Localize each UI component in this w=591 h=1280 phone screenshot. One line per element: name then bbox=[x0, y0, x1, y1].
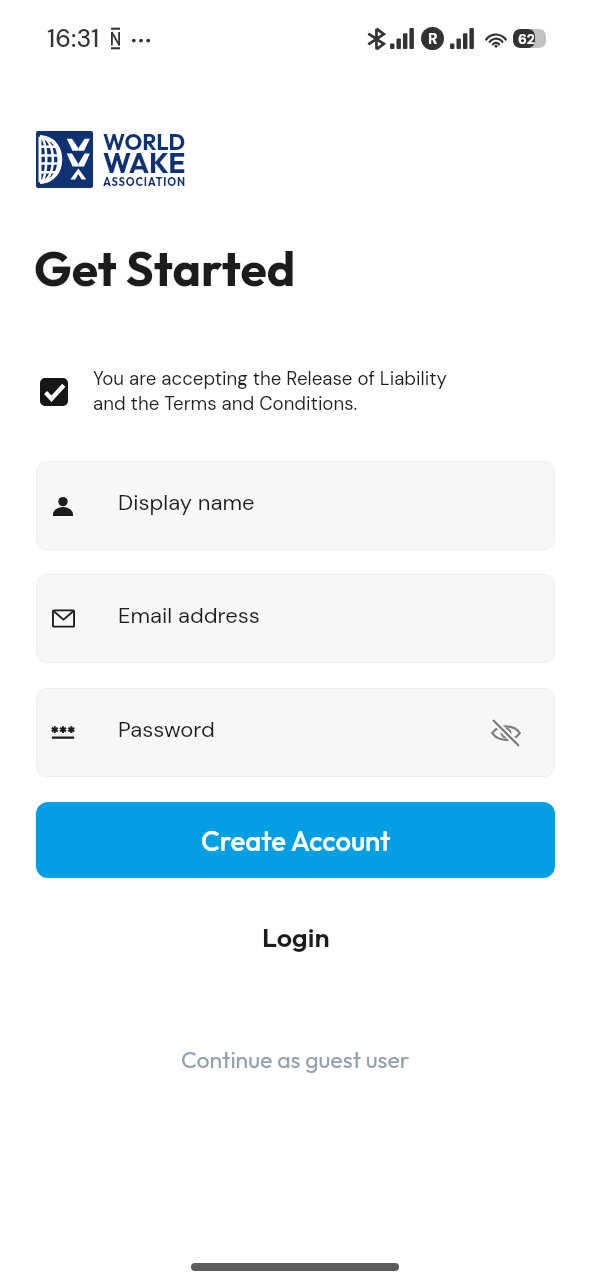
button[interactable]: Password bbox=[36, 688, 555, 777]
staticText: 16:31 bbox=[47, 22, 100, 55]
staticText: You are accepting the Release of Liabili… bbox=[93, 366, 447, 416]
staticText: R bbox=[428, 29, 438, 49]
staticText: Continue as guest user bbox=[181, 1045, 410, 1074]
button[interactable]: Email address bbox=[36, 574, 555, 663]
button[interactable]: You are accepting the Release of Liabili… bbox=[40, 366, 456, 416]
staticText: ASSOCIATION bbox=[103, 175, 186, 189]
staticText: Get Started bbox=[34, 238, 296, 298]
button[interactable]: Continue as guest user bbox=[163, 1037, 428, 1082]
staticText: Display name bbox=[118, 488, 255, 517]
button[interactable]: Show password bbox=[484, 711, 528, 755]
staticText: Login bbox=[262, 920, 330, 954]
button[interactable]: Create Account bbox=[36, 802, 555, 878]
staticText: WORLD bbox=[103, 128, 186, 156]
staticText: Create Account bbox=[201, 823, 391, 858]
staticText: Password bbox=[118, 715, 215, 744]
staticText: Email address bbox=[118, 601, 260, 630]
staticText: 62 bbox=[518, 30, 535, 48]
button[interactable]: Display name bbox=[36, 461, 555, 550]
staticText: WAKE bbox=[103, 145, 186, 180]
button[interactable]: Login bbox=[240, 912, 352, 962]
